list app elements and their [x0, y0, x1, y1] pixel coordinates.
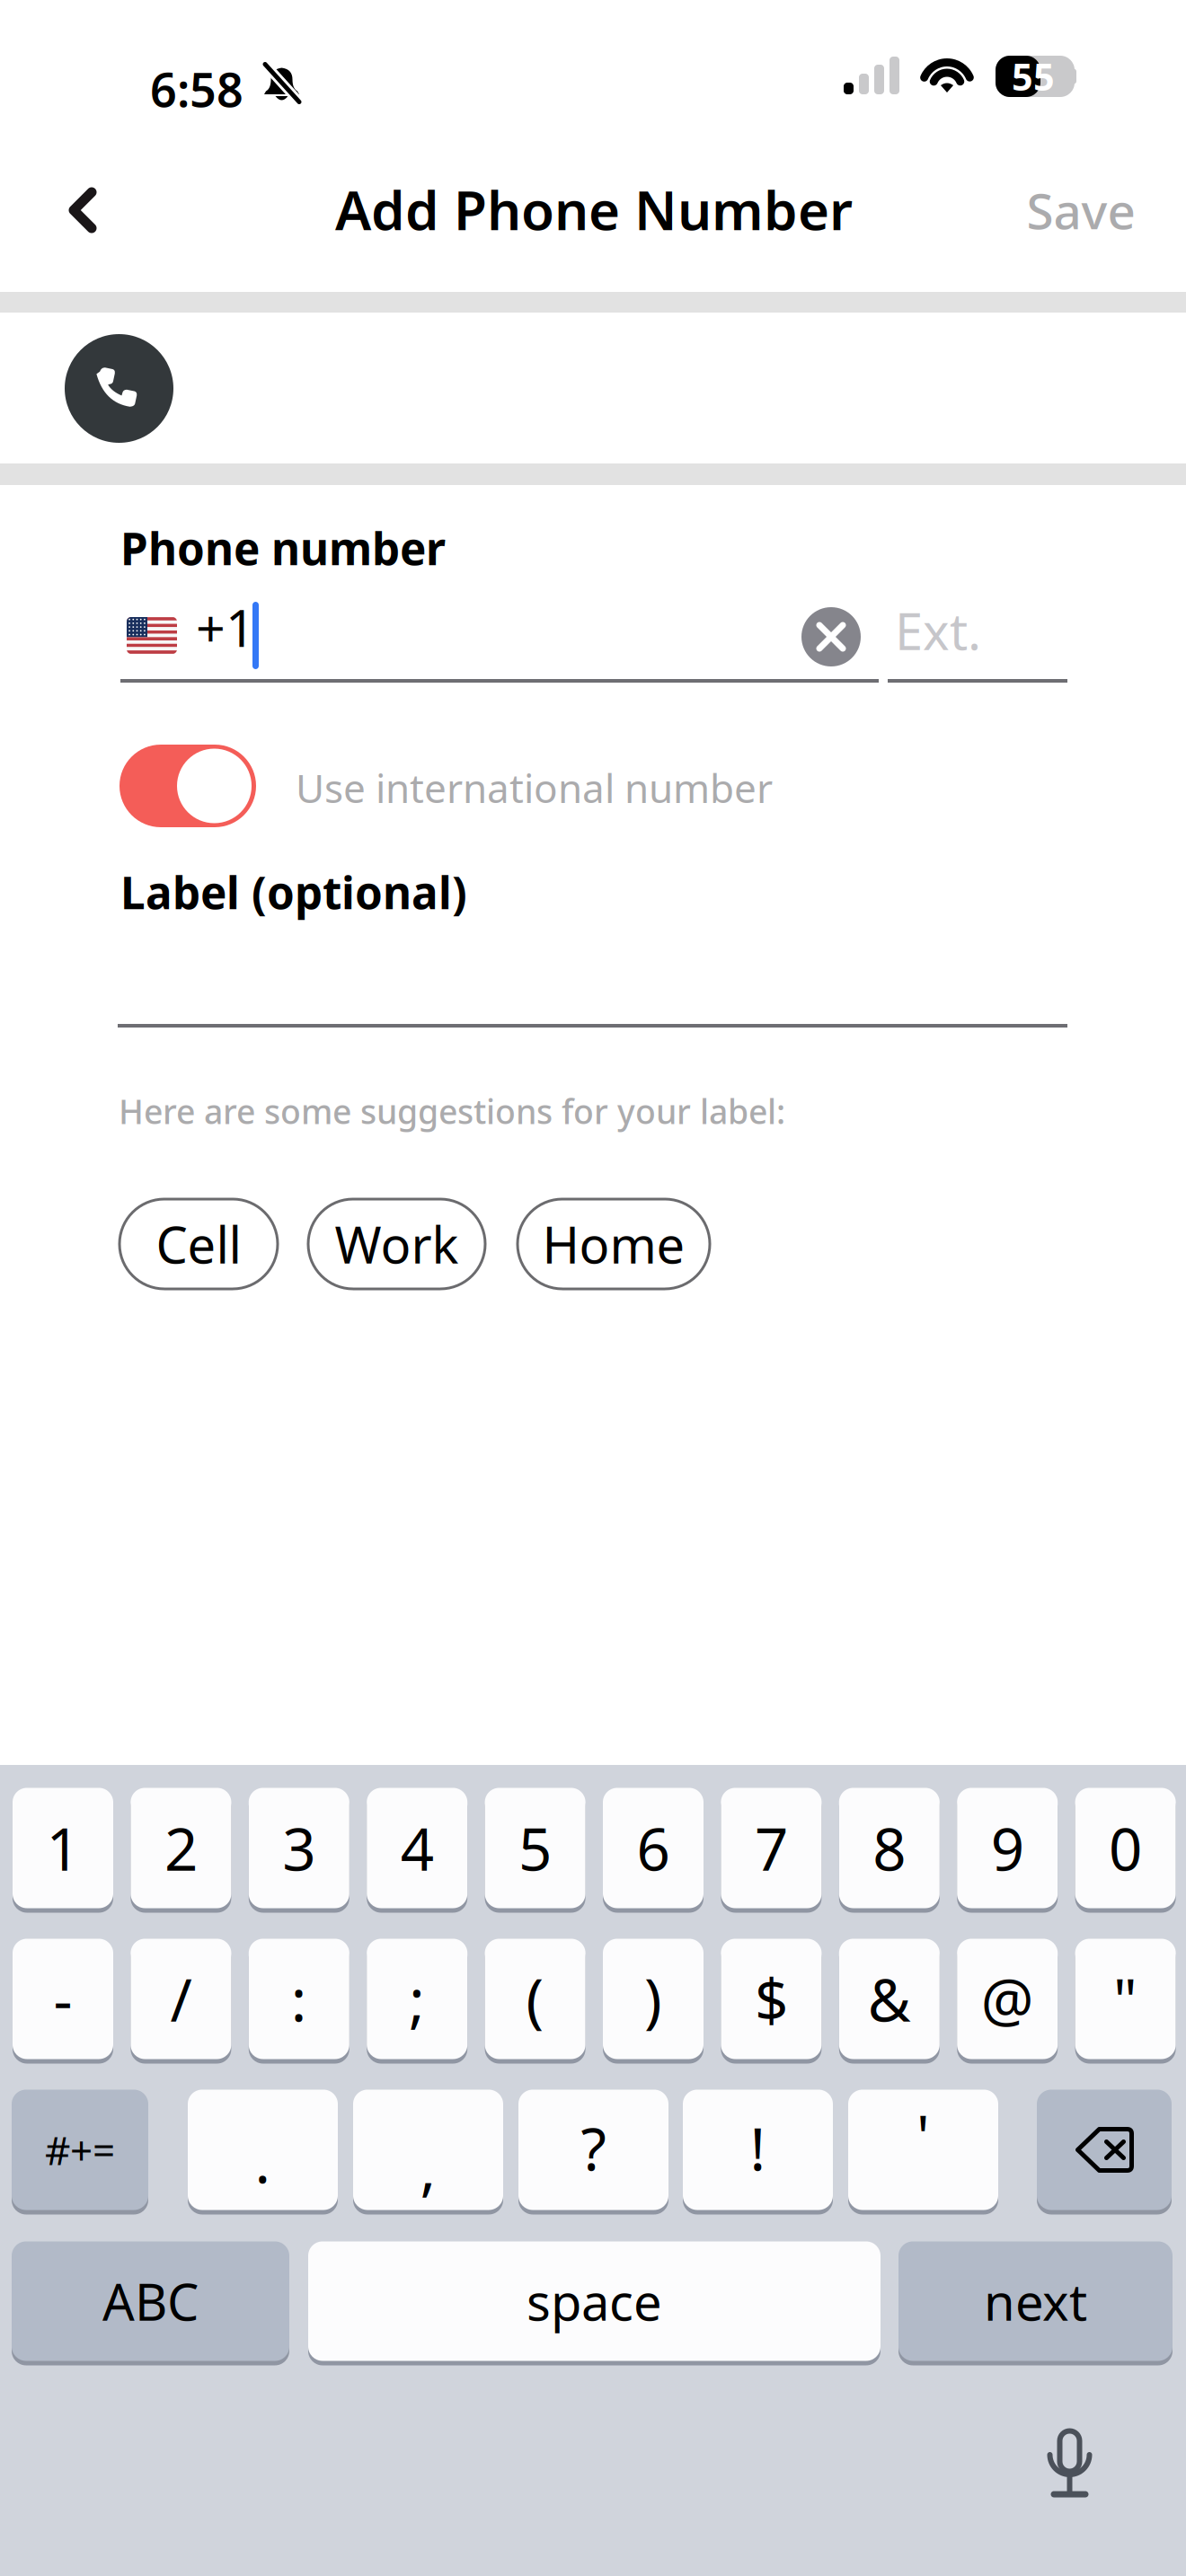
button[interactable]: Use international number: [119, 745, 256, 827]
button[interactable]: .: [188, 2087, 338, 2212]
button[interactable]: Clear: [801, 607, 861, 666]
staticText: Add Phone Number: [335, 174, 853, 245]
staticText: Cell: [156, 1211, 241, 1277]
button[interactable]: 0: [1075, 1786, 1176, 1910]
button[interactable]: Cell: [119, 1199, 278, 1289]
button[interactable]: !: [683, 2087, 833, 2212]
staticText: Work: [335, 1211, 459, 1277]
staticText: 5: [519, 1809, 552, 1887]
button[interactable]: ": [1075, 1936, 1176, 2061]
button[interactable]: :: [249, 1936, 349, 2061]
button[interactable]: 6: [603, 1786, 704, 1910]
button[interactable]: 3: [249, 1786, 349, 1910]
button[interactable]: (: [485, 1936, 585, 2061]
button[interactable]: @: [957, 1936, 1058, 2061]
staticText: Use international number: [296, 761, 773, 814]
button[interactable]: 1: [13, 1786, 113, 1910]
staticText: :: [291, 1960, 307, 2038]
button[interactable]: 7: [721, 1786, 822, 1910]
staticText: ;: [409, 1960, 425, 2038]
button[interactable]: Phone: [65, 334, 173, 443]
staticText: 9: [991, 1809, 1024, 1887]
staticText: +1: [196, 593, 255, 661]
button[interactable]: space: [308, 2239, 881, 2363]
button[interactable]: Back: [36, 163, 129, 257]
button[interactable]: next: [898, 2239, 1173, 2363]
staticText: next: [984, 2268, 1087, 2335]
staticText: ': [916, 2096, 930, 2174]
staticText: 3: [282, 1809, 316, 1887]
button[interactable]: ABC: [12, 2239, 289, 2363]
staticText: ": [1113, 1960, 1138, 2038]
staticText: 6: [637, 1809, 670, 1887]
staticText: Home: [542, 1211, 685, 1277]
staticText: 1: [46, 1809, 80, 1887]
staticText: (: [526, 1960, 544, 2038]
button[interactable]: -: [13, 1936, 113, 2061]
button[interactable]: Save: [1017, 167, 1145, 253]
staticText: Phone number: [120, 518, 446, 577]
button[interactable]: $: [721, 1936, 822, 2061]
staticText: 7: [755, 1809, 788, 1887]
staticText: -: [53, 1960, 72, 2038]
staticText: ABC: [102, 2268, 199, 2335]
staticText: ): [644, 1960, 662, 2038]
staticText: !: [750, 2109, 766, 2187]
button[interactable]: Dictation: [1043, 2428, 1096, 2501]
button[interactable]: 8: [839, 1786, 940, 1910]
button[interactable]: 9: [957, 1786, 1058, 1910]
button[interactable]: 5: [485, 1786, 585, 1910]
button[interactable]: &: [839, 1936, 940, 2061]
button[interactable]: Work: [308, 1199, 485, 1289]
button[interactable]: ?: [518, 2087, 668, 2212]
button[interactable]: #+=: [12, 2087, 148, 2212]
staticText: 0: [1109, 1809, 1142, 1887]
staticText: 6:58: [150, 58, 243, 120]
staticText: ,: [420, 2129, 436, 2207]
button[interactable]: ;: [367, 1936, 467, 2061]
staticText: Save: [1027, 178, 1135, 243]
button[interactable]: Delete: [1037, 2087, 1172, 2212]
button[interactable]: ': [848, 2087, 998, 2212]
staticText: ?: [581, 2109, 606, 2187]
staticText: #+=: [45, 2124, 115, 2176]
button[interactable]: 2: [131, 1786, 231, 1910]
staticText: 4: [400, 1809, 434, 1887]
staticText: .: [255, 2122, 271, 2200]
button[interactable]: 4: [367, 1786, 467, 1910]
button[interactable]: ): [603, 1936, 704, 2061]
staticText: Label (optional): [120, 862, 467, 921]
staticText: /: [170, 1960, 192, 2038]
staticText: @: [981, 1960, 1034, 2038]
button[interactable]: /: [131, 1936, 231, 2061]
staticText: Here are some suggestions for your label…: [119, 1089, 785, 1133]
button[interactable]: ,: [353, 2087, 503, 2212]
staticText: Ext.: [895, 597, 981, 664]
staticText: 8: [873, 1809, 906, 1887]
staticText: $: [755, 1960, 788, 2038]
staticText: &: [868, 1960, 911, 2038]
staticText: 2: [164, 1809, 198, 1887]
staticText: space: [527, 2268, 662, 2335]
staticText: 55: [1012, 52, 1055, 101]
button[interactable]: Home: [518, 1199, 710, 1289]
